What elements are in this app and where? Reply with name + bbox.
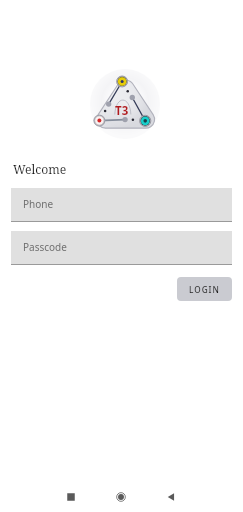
staticText: Phone: [23, 197, 54, 211]
staticText: Passcode: [23, 240, 67, 254]
button[interactable]: Recent apps: [51, 482, 91, 512]
staticText: Welcome: [13, 161, 67, 178]
button[interactable]: LOGIN: [177, 277, 232, 301]
button[interactable]: Home: [101, 482, 141, 512]
staticText: T3: [115, 103, 129, 119]
button[interactable]: Phone: [11, 188, 232, 222]
button[interactable]: Passcode: [11, 231, 232, 265]
staticText: LOGIN: [189, 284, 220, 295]
button[interactable]: Back: [151, 482, 191, 512]
